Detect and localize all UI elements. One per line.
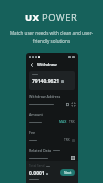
staticText: Related Data [29, 148, 52, 153]
staticText: Next [64, 171, 72, 175]
staticText: Amount [29, 112, 43, 117]
button[interactable]: Back [26, 60, 78, 69]
staticText: MAX [59, 120, 67, 124]
staticText: Withdraw Address [29, 94, 61, 99]
button[interactable]: Paste address [65, 102, 69, 106]
button[interactable]: Related Data [29, 148, 75, 160]
button[interactable]: Withdraw Address [29, 94, 75, 108]
button[interactable]: Attach data [71, 156, 75, 160]
button[interactable]: 79140.9621 [29, 71, 75, 90]
staticText: UX [25, 11, 42, 24]
staticText: Match user needs with clean and user- fr… [5, 30, 98, 45]
button[interactable]: Fee [29, 130, 75, 144]
button[interactable]: Next [60, 169, 75, 176]
button[interactable]: Scan QR code [71, 102, 75, 106]
staticText: Total Send [29, 164, 45, 168]
staticText: TRX [64, 138, 70, 142]
staticText: 79140.9621 [32, 78, 60, 85]
staticText: 0.0001 [29, 170, 45, 177]
staticText: Withdraw [37, 62, 57, 68]
staticText: Fee [29, 130, 36, 135]
button[interactable]: Back [29, 62, 35, 68]
staticText: TRX [69, 120, 75, 124]
button[interactable]: Amount [29, 112, 75, 126]
staticText: POWER [42, 11, 78, 24]
